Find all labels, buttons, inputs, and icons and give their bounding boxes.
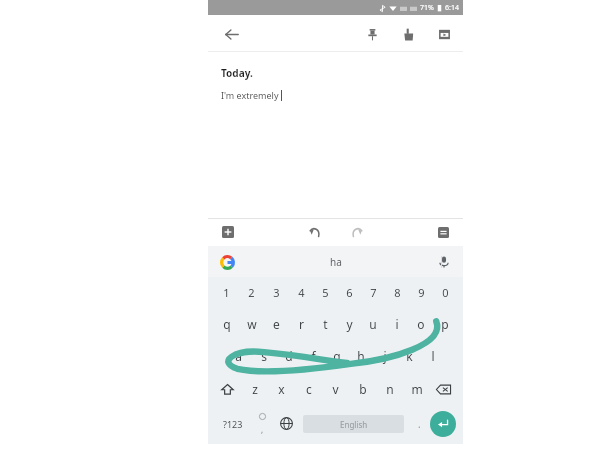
button[interactable]: w (239, 308, 264, 340)
staticText: v (332, 381, 339, 397)
staticText: 6 (346, 285, 353, 300)
staticText: . (418, 417, 421, 431)
button[interactable]: 0 (433, 277, 457, 308)
button[interactable]: 9 (409, 277, 433, 308)
button[interactable]: x (268, 372, 295, 406)
staticText: h (357, 348, 365, 364)
button[interactable]: l (421, 340, 445, 372)
staticText: , (261, 424, 264, 435)
button[interactable]: 5 (313, 277, 337, 308)
button[interactable]: b (349, 372, 376, 406)
staticText: I'm extremely (221, 89, 279, 101)
button[interactable]: Redo (347, 222, 367, 242)
button[interactable]: v (322, 372, 349, 406)
button[interactable]: 3 (264, 277, 289, 308)
staticText: k (406, 348, 413, 364)
staticText: Today. (221, 66, 253, 80)
staticText: 0 (442, 285, 449, 300)
staticText: x (278, 381, 285, 397)
staticText: r (299, 316, 304, 332)
staticText: z (252, 381, 258, 397)
button[interactable]: English (303, 415, 404, 433)
button[interactable]: Voice input (434, 252, 454, 272)
staticText: 71% (420, 3, 434, 13)
button[interactable]: Google (217, 252, 237, 272)
staticText: 8 (394, 285, 401, 300)
button[interactable]: o (409, 308, 433, 340)
button[interactable]: Emoji and comma (251, 406, 273, 441)
staticText: g (333, 348, 341, 364)
button[interactable]: 7 (361, 277, 385, 308)
button[interactable]: Backspace (430, 372, 457, 406)
button[interactable]: s (251, 340, 276, 372)
staticText: English (340, 419, 368, 430)
staticText: 6:14 (445, 3, 459, 13)
button[interactable]: u (361, 308, 385, 340)
button[interactable]: Enter (430, 411, 456, 437)
staticText: l (431, 348, 435, 364)
staticText: o (417, 316, 425, 332)
button[interactable]: . (408, 406, 430, 441)
button[interactable]: k (397, 340, 421, 372)
button[interactable]: Pin (361, 23, 383, 45)
button[interactable]: d (276, 340, 301, 372)
button[interactable]: Shift (214, 372, 241, 406)
staticText: b (359, 381, 367, 397)
staticText: 9 (418, 285, 425, 300)
staticText: 5 (322, 285, 329, 300)
staticText: n (386, 381, 394, 397)
button[interactable]: 6 (337, 277, 361, 308)
staticText: j (383, 348, 387, 364)
staticText: t (323, 316, 328, 332)
button[interactable]: 1 (214, 277, 239, 308)
button[interactable]: a (226, 340, 251, 372)
staticText: 2 (248, 285, 255, 300)
button[interactable]: j (373, 340, 397, 372)
button[interactable]: 8 (385, 277, 409, 308)
button[interactable]: i (385, 308, 409, 340)
staticText: 4 (298, 285, 305, 300)
staticText: u (369, 316, 377, 332)
staticText: a (235, 348, 242, 364)
button[interactable]: g (325, 340, 349, 372)
staticText: s (261, 348, 267, 364)
button[interactable]: r (289, 308, 313, 340)
staticText: i (395, 316, 399, 332)
staticText: f (311, 348, 316, 364)
button[interactable]: Change language (273, 406, 299, 441)
button[interactable]: Undo (305, 222, 325, 242)
staticText: d (285, 348, 293, 364)
staticText: w (247, 316, 257, 332)
button[interactable]: ?123 (215, 406, 251, 441)
button[interactable]: y (337, 308, 361, 340)
button[interactable]: 2 (239, 277, 264, 308)
button[interactable]: e (264, 308, 289, 340)
button[interactable]: More options (433, 222, 453, 242)
staticText: 3 (273, 285, 280, 300)
button[interactable]: q (214, 308, 239, 340)
staticText: m (411, 381, 423, 397)
button[interactable]: n (376, 372, 403, 406)
button[interactable]: Back (218, 21, 244, 47)
staticText: y (346, 316, 353, 332)
staticText: c (306, 381, 312, 397)
button[interactable]: f (301, 340, 325, 372)
button[interactable]: Add (218, 222, 238, 242)
button[interactable]: Archive (433, 23, 455, 45)
button[interactable]: t (313, 308, 337, 340)
staticText: 1 (223, 285, 230, 300)
button[interactable]: p (433, 308, 457, 340)
button[interactable]: Draw (397, 23, 419, 45)
staticText: e (273, 316, 280, 332)
staticText: p (441, 316, 449, 332)
staticText: q (223, 316, 231, 332)
button[interactable]: m (403, 372, 430, 406)
button[interactable]: c (295, 372, 322, 406)
button[interactable]: h (349, 340, 373, 372)
staticText: ?123 (223, 418, 243, 430)
button[interactable]: 4 (289, 277, 313, 308)
button[interactable]: z (241, 372, 268, 406)
staticText: ha (330, 255, 342, 269)
staticText: 7 (370, 285, 377, 300)
